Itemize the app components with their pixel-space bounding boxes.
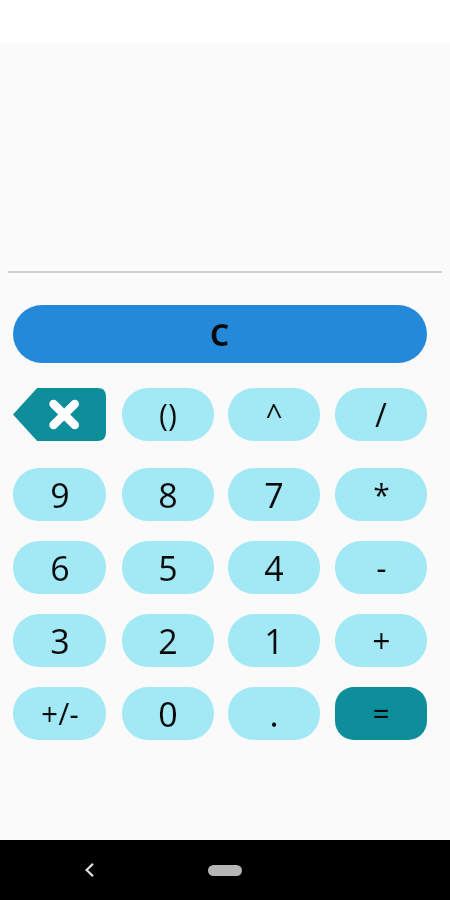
staticText: 6 bbox=[50, 545, 70, 591]
button[interactable]: Back bbox=[68, 840, 112, 900]
button[interactable]: 8 bbox=[122, 468, 214, 521]
staticText: 0 bbox=[158, 691, 178, 737]
staticText: . bbox=[269, 691, 279, 737]
button[interactable]: C bbox=[13, 305, 427, 363]
staticText: 5 bbox=[158, 545, 178, 591]
staticText: 1 bbox=[264, 618, 284, 664]
button[interactable]: 1 bbox=[228, 614, 320, 667]
button[interactable]: 6 bbox=[13, 541, 106, 594]
staticText: 8 bbox=[158, 472, 178, 518]
button[interactable]: 7 bbox=[228, 468, 320, 521]
staticText: +/- bbox=[41, 693, 79, 734]
button[interactable]: 9 bbox=[13, 468, 106, 521]
staticText: ^ bbox=[265, 394, 283, 435]
button[interactable]: . bbox=[228, 687, 320, 740]
staticText: 2 bbox=[158, 618, 178, 664]
staticText: () bbox=[159, 394, 177, 435]
button[interactable]: +/- bbox=[13, 687, 106, 740]
button[interactable]: Backspace bbox=[13, 388, 106, 441]
button[interactable]: 4 bbox=[228, 541, 320, 594]
button[interactable]: 3 bbox=[13, 614, 106, 667]
staticText: C bbox=[210, 314, 230, 355]
staticText: - bbox=[376, 546, 387, 590]
button[interactable]: * bbox=[335, 468, 427, 521]
staticText: * bbox=[373, 474, 390, 515]
staticText: 7 bbox=[264, 472, 284, 518]
button[interactable]: Home bbox=[195, 840, 255, 900]
staticText: 9 bbox=[50, 472, 70, 518]
staticText: + bbox=[372, 619, 391, 663]
button[interactable]: = bbox=[335, 687, 427, 740]
button[interactable]: ^ bbox=[228, 388, 320, 441]
staticText: 4 bbox=[264, 545, 284, 591]
button[interactable]: / bbox=[335, 388, 427, 441]
staticText: 3 bbox=[50, 618, 70, 664]
staticText: = bbox=[372, 693, 390, 734]
button[interactable]: 2 bbox=[122, 614, 214, 667]
button[interactable]: - bbox=[335, 541, 427, 594]
staticText: / bbox=[375, 393, 387, 437]
button[interactable]: + bbox=[335, 614, 427, 667]
button[interactable]: 5 bbox=[122, 541, 214, 594]
button[interactable]: 0 bbox=[122, 687, 214, 740]
button[interactable]: () bbox=[122, 388, 214, 441]
